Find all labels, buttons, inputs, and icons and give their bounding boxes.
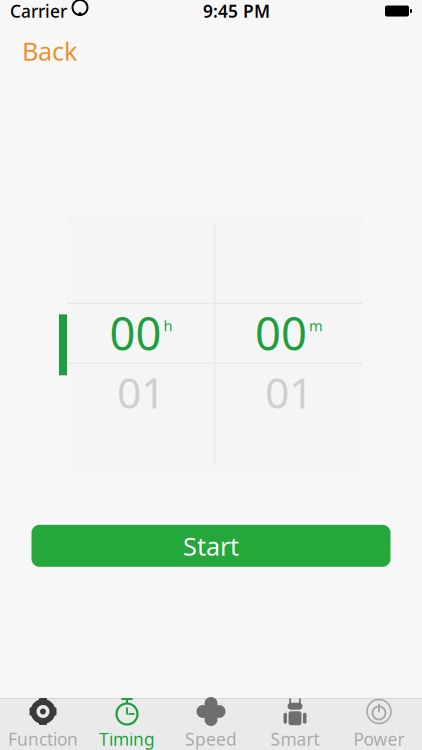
button[interactable]: Speed (169, 699, 253, 750)
staticText: Function (8, 727, 78, 750)
staticText: Carrier (10, 0, 67, 22)
staticText: Smart (270, 727, 319, 750)
button[interactable]: Back (10, 28, 90, 74)
staticText: 9:45 PM (203, 0, 270, 22)
button[interactable]: Timing (85, 699, 169, 750)
staticText: Start (183, 529, 239, 563)
staticText: Speed (185, 727, 237, 750)
button[interactable]: Start (31, 525, 390, 567)
staticText: 00 (109, 303, 161, 363)
staticText: m (309, 316, 323, 335)
staticText: 01 (117, 363, 165, 420)
button[interactable]: Function (1, 699, 85, 750)
staticText: Power (353, 727, 404, 750)
staticText: Timing (99, 727, 155, 750)
staticText: 00 (255, 303, 307, 363)
staticText: 01 (265, 363, 313, 420)
button[interactable]: Smart (253, 699, 337, 750)
staticText: Back (22, 34, 78, 68)
button[interactable]: Power (337, 699, 421, 750)
staticText: h (163, 316, 172, 335)
